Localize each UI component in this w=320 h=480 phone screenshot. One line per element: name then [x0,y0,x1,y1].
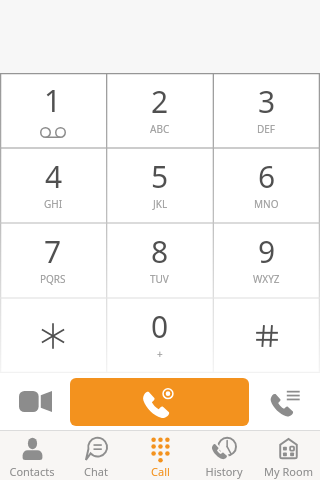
staticText: GHI [44,197,63,211]
button[interactable]: 0 [106,298,213,373]
button[interactable]: My Room [256,431,320,480]
staticText: TUV [150,272,169,286]
button[interactable]: 9 [213,223,320,298]
button[interactable]: Video call [0,373,70,430]
button[interactable]: Call log [249,373,320,430]
staticText: 2 [151,81,169,122]
staticText: DEF [257,122,276,136]
staticText: 4 [45,156,63,197]
button[interactable]: 6 [213,148,320,223]
staticText: History [205,464,243,479]
button[interactable] [0,298,106,373]
button[interactable]: Call [70,378,249,426]
button[interactable]: 8 [106,223,213,298]
staticText: MNO [254,197,279,211]
button[interactable]: Chat [64,431,128,480]
staticText: 3 [258,81,276,122]
button[interactable]: 7 [0,223,106,298]
staticText: + [157,347,163,361]
staticText: 7 [44,231,62,272]
staticText: My Room [264,464,313,479]
button[interactable]: 4 [0,148,106,223]
staticText: WXYZ [253,272,280,286]
staticText: 0 [151,306,169,347]
staticText: PQRS [40,272,66,286]
staticText: Call [151,464,170,479]
button[interactable]: Call [128,431,192,480]
button[interactable]: Contacts [0,431,64,480]
staticText: ABC [150,122,170,136]
button[interactable]: 2 [106,73,213,148]
staticText: JKL [153,197,168,211]
staticText: 8 [151,231,169,272]
staticText: 6 [258,156,276,197]
staticText: 1 [44,80,62,121]
button[interactable]: 1 [0,73,106,148]
staticText: Contacts [9,464,55,479]
button[interactable] [213,298,320,373]
button[interactable]: 3 [213,73,320,148]
button[interactable]: 5 [106,148,213,223]
button[interactable]: History [192,431,256,480]
staticText: 9 [258,231,276,272]
staticText: Chat [84,464,108,479]
staticText: 5 [151,156,169,197]
